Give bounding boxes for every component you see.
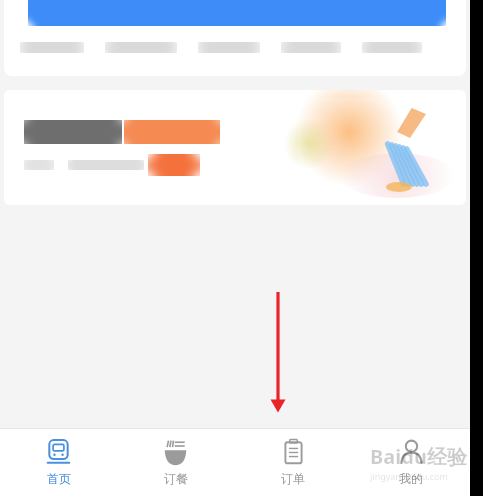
- button[interactable]: [4, 90, 466, 205]
- button[interactable]: 订餐: [117, 428, 234, 496]
- button[interactable]: 订单: [234, 428, 352, 496]
- staticText: 订餐: [164, 471, 188, 486]
- button[interactable]: [4, 0, 466, 76]
- staticText: 我的: [399, 471, 423, 486]
- staticText: jingyan.baidu.com: [370, 470, 448, 482]
- staticText: 首页: [47, 471, 71, 486]
- staticText: 订单: [281, 471, 305, 486]
- button[interactable]: 我的: [352, 428, 470, 496]
- button[interactable]: 首页: [0, 428, 117, 496]
- staticText: Baidu经验: [370, 443, 467, 470]
